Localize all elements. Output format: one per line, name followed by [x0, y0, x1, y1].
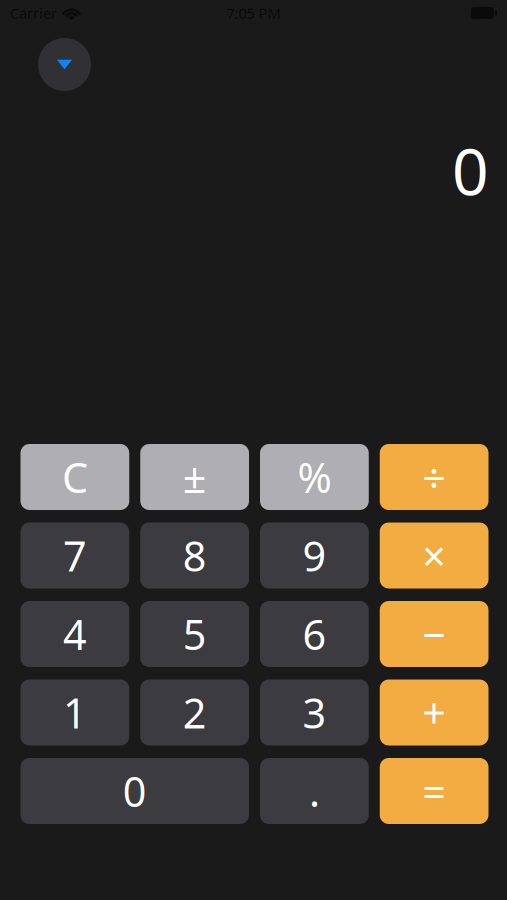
- button[interactable]: =: [380, 758, 489, 824]
- button[interactable]: −: [380, 601, 489, 667]
- button[interactable]: 5: [140, 601, 249, 667]
- staticText: 9: [302, 528, 326, 583]
- staticText: 3: [302, 685, 326, 740]
- button[interactable]: 6: [260, 601, 369, 667]
- button[interactable]: .: [260, 758, 369, 824]
- staticText: 7: [63, 528, 87, 583]
- button[interactable]: ×: [380, 522, 489, 588]
- button[interactable]: 0: [20, 758, 249, 824]
- staticText: ±: [183, 450, 207, 504]
- button[interactable]: ±: [140, 444, 249, 510]
- button[interactable]: %: [260, 444, 369, 510]
- staticText: ÷: [422, 450, 446, 504]
- button[interactable]: C: [20, 444, 129, 510]
- staticText: %: [297, 450, 331, 504]
- staticText: 1: [63, 685, 87, 740]
- staticText: 0: [123, 764, 147, 818]
- staticText: 4: [63, 607, 87, 661]
- staticText: =: [422, 764, 446, 818]
- button[interactable]: 2: [140, 679, 249, 745]
- button[interactable]: Collapse: [38, 38, 91, 91]
- staticText: 6: [302, 607, 326, 661]
- staticText: 5: [183, 607, 207, 661]
- button[interactable]: 8: [140, 522, 249, 588]
- staticText: Carrier: [10, 3, 57, 23]
- staticText: 8: [183, 528, 207, 583]
- staticText: 2: [183, 685, 207, 740]
- button[interactable]: 4: [20, 601, 129, 667]
- button[interactable]: +: [380, 679, 489, 745]
- staticText: −: [422, 607, 446, 661]
- button[interactable]: 9: [260, 522, 369, 588]
- staticText: ×: [422, 528, 446, 583]
- staticText: 7:05 PM: [226, 3, 280, 23]
- staticText: C: [62, 450, 88, 504]
- button[interactable]: 1: [20, 679, 129, 745]
- button[interactable]: 7: [20, 522, 129, 588]
- button[interactable]: ÷: [380, 444, 489, 510]
- staticText: 0: [452, 128, 489, 213]
- staticText: .: [309, 764, 320, 818]
- staticText: +: [422, 685, 446, 740]
- button[interactable]: 3: [260, 679, 369, 745]
